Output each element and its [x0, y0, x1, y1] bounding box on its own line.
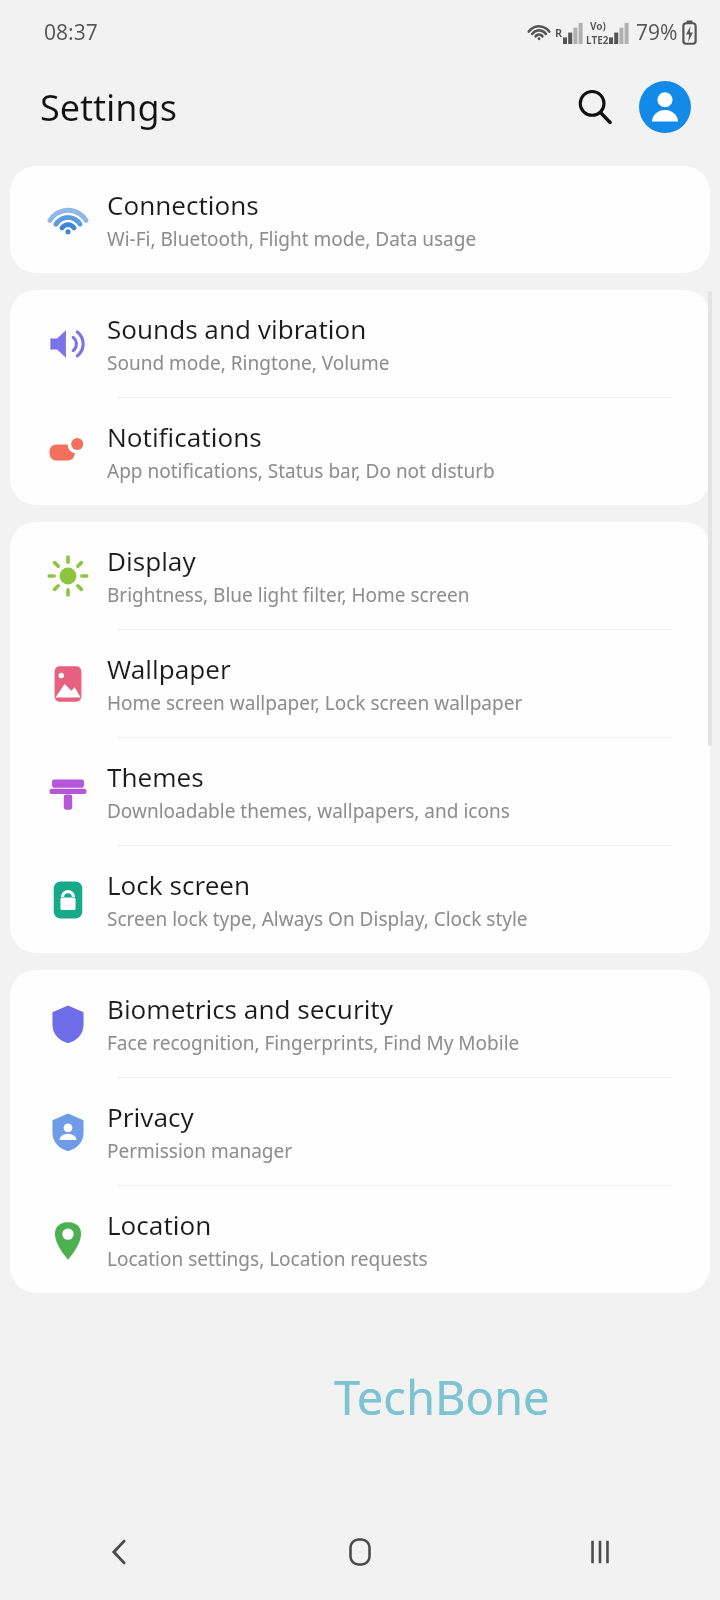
button[interactable]: Lock screen: [10, 846, 710, 953]
staticText: Face recognition, Fingerprints, Find My …: [107, 1030, 520, 1056]
staticText: Themes: [107, 759, 204, 794]
button[interactable]: Back: [0, 1504, 240, 1600]
button[interactable]: Connections: [10, 166, 710, 273]
staticText: App notifications, Status bar, Do not di…: [107, 458, 495, 484]
staticText: Lock screen: [107, 867, 251, 902]
button[interactable]: Sounds and vibration: [10, 290, 710, 397]
button[interactable]: Wallpaper: [10, 630, 710, 737]
button[interactable]: Notifications: [10, 398, 710, 505]
button[interactable]: Privacy: [10, 1078, 710, 1185]
staticText: LTE2: [586, 33, 609, 47]
staticText: TechBone: [334, 1365, 550, 1429]
staticText: Wallpaper: [107, 651, 231, 686]
button[interactable]: Location: [10, 1186, 710, 1293]
staticText: Notifications: [107, 419, 262, 454]
button[interactable]: Recents: [480, 1504, 720, 1600]
button[interactable]: Search: [566, 78, 624, 136]
button[interactable]: Account: [636, 78, 694, 136]
button[interactable]: Display: [10, 522, 710, 629]
staticText: Location settings, Location requests: [107, 1246, 428, 1272]
staticText: Sound mode, Ringtone, Volume: [107, 350, 390, 376]
button[interactable]: Biometrics and security: [10, 970, 710, 1077]
staticText: Brightness, Blue light filter, Home scre…: [107, 582, 470, 608]
staticText: Home screen wallpaper, Lock screen wallp…: [107, 690, 523, 716]
staticText: 08:37: [44, 18, 98, 47]
staticText: Location: [107, 1207, 212, 1242]
staticText: 79%: [636, 18, 678, 47]
button[interactable]: Themes: [10, 738, 710, 845]
button[interactable]: Home: [240, 1504, 480, 1600]
staticText: Connections: [107, 187, 259, 222]
staticText: Wi-Fi, Bluetooth, Flight mode, Data usag…: [107, 226, 477, 252]
staticText: Permission manager: [107, 1138, 293, 1164]
staticText: Screen lock type, Always On Display, Clo…: [107, 906, 528, 932]
staticText: Biometrics and security: [107, 991, 394, 1026]
staticText: Vo): [590, 19, 606, 33]
staticText: Display: [107, 543, 196, 578]
staticText: Privacy: [107, 1099, 194, 1134]
staticText: Settings: [40, 83, 177, 132]
staticText: R: [555, 25, 563, 40]
staticText: Downloadable themes, wallpapers, and ico…: [107, 798, 510, 824]
staticText: Sounds and vibration: [107, 311, 367, 346]
